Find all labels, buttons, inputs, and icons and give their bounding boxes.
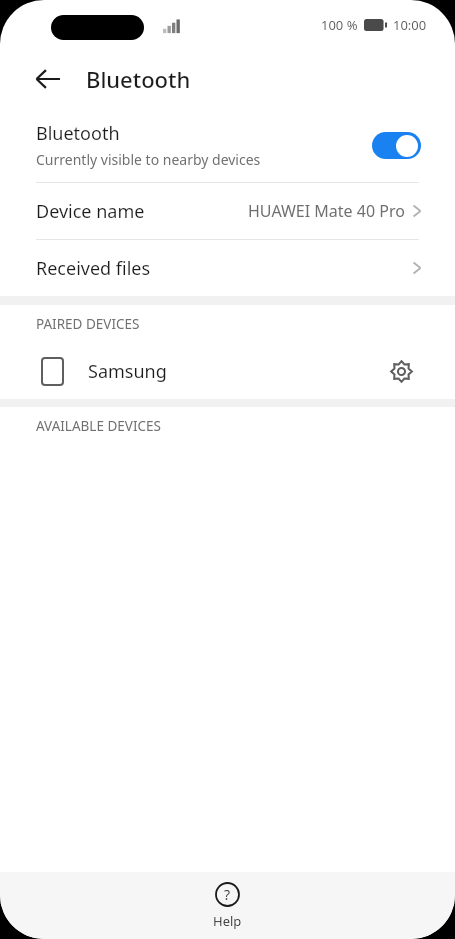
staticText: AVAILABLE DEVICES: [36, 417, 161, 435]
staticText: Bluetooth: [86, 64, 191, 94]
button[interactable]: Bluetooth toggle: [372, 132, 421, 159]
staticText: Help: [213, 912, 242, 930]
staticText: Bluetooth: [36, 121, 120, 146]
staticText: Received files: [36, 256, 151, 281]
button[interactable]: Bluetooth: [0, 108, 455, 182]
staticText: PAIRED DEVICES: [36, 315, 140, 333]
staticText: Device name: [36, 199, 145, 224]
staticText: 10:00: [393, 16, 427, 34]
button[interactable]: Back: [24, 55, 72, 103]
staticText: ?: [224, 885, 231, 904]
button[interactable]: Received files: [0, 240, 455, 296]
button[interactable]: Samsung: [0, 343, 455, 399]
button[interactable]: Device name: [0, 183, 455, 239]
staticText: Currently visible to nearby devices: [36, 150, 261, 169]
staticText: HUAWEI Mate 40 Pro: [248, 200, 405, 222]
button[interactable]: ?: [0, 872, 455, 939]
staticText: 100 %: [321, 16, 358, 34]
button[interactable]: Device settings: [381, 351, 421, 391]
staticText: Samsung: [88, 359, 167, 384]
